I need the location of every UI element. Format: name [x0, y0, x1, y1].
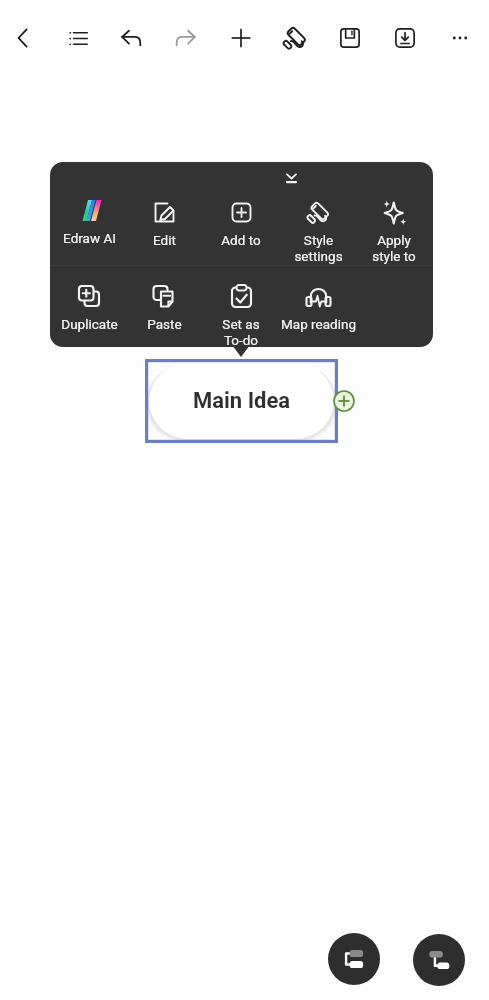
button[interactable]: Main Idea [145, 359, 338, 443]
staticText: Main Idea [193, 388, 291, 414]
button[interactable]: Duplicate [50, 284, 139, 332]
button[interactable]: Redo [163, 15, 209, 61]
staticText: Paste [147, 316, 182, 332]
button[interactable]: Style settings [268, 200, 368, 265]
staticText: Edit [153, 232, 176, 248]
staticText: Map reading [281, 316, 356, 332]
staticText: Apply style to [372, 232, 416, 265]
button[interactable]: Paste [114, 284, 214, 332]
staticText: Duplicate [61, 316, 118, 332]
button[interactable]: Layout right [328, 933, 380, 985]
button[interactable]: Add to [191, 200, 291, 248]
button[interactable]: Undo [108, 15, 154, 61]
button[interactable]: Outline [55, 15, 101, 61]
button[interactable]: More [437, 15, 483, 61]
button[interactable]: Map reading [268, 284, 368, 332]
staticText: Set as To-do [222, 316, 260, 347]
button[interactable]: Set as To-do [191, 284, 291, 347]
button[interactable]: Apply style to [344, 200, 433, 265]
button[interactable]: Add child topic [333, 390, 355, 412]
button[interactable]: Export [382, 15, 428, 61]
button[interactable]: Edit [114, 200, 214, 248]
staticText: Add to [221, 232, 261, 248]
button[interactable]: Layout down [413, 934, 465, 986]
button[interactable]: Add [218, 15, 264, 61]
button[interactable]: Edraw AI [50, 198, 139, 246]
button[interactable]: Collapse [279, 166, 303, 190]
button[interactable]: Back [0, 15, 46, 61]
staticText: Edraw AI [63, 230, 116, 246]
button[interactable]: Format painter [272, 15, 318, 61]
button[interactable]: Save [327, 15, 373, 61]
staticText: Style settings [294, 232, 343, 265]
